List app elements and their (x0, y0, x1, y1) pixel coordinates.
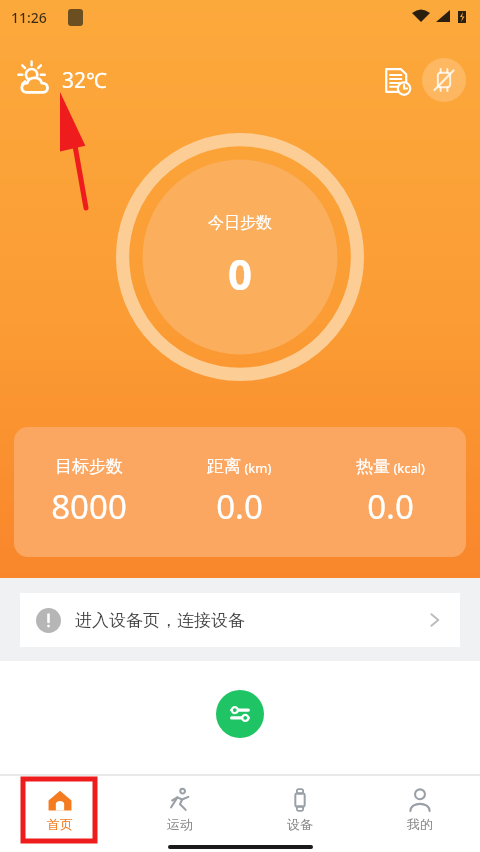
staticText: 11:26 (11, 8, 47, 27)
staticText: (km) (241, 459, 272, 477)
staticText: 0.0 (216, 484, 263, 529)
button[interactable]: 进入设备页，连接设备 (20, 593, 460, 647)
staticText: 首页 (47, 816, 73, 832)
staticText: 今日步数 (208, 213, 272, 233)
button[interactable]: 今日步数 (116, 133, 364, 381)
staticText: 设备 (287, 816, 313, 832)
button[interactable]: Device disconnected (422, 58, 466, 102)
button[interactable]: Settings (216, 690, 264, 738)
staticText: 32℃ (62, 66, 107, 95)
staticText: 距离 (207, 456, 241, 477)
staticText: 我的 (407, 816, 433, 832)
button[interactable]: 目标步数 (14, 427, 466, 557)
staticText: 进入设备页，连接设备 (75, 610, 245, 631)
staticText: 0 (228, 245, 253, 302)
staticText: 热量 (356, 456, 390, 477)
staticText: 目标步数 (55, 456, 123, 477)
staticText: (kcal) (390, 459, 426, 477)
button[interactable]: History (374, 58, 418, 102)
button[interactable]: 运动 (120, 775, 240, 843)
staticText: 8000 (51, 484, 127, 529)
staticText: 0.0 (367, 484, 414, 529)
button[interactable]: 我的 (360, 775, 480, 843)
button[interactable]: 设备 (240, 775, 360, 843)
button[interactable]: 首页 (0, 775, 120, 843)
staticText: 运动 (167, 816, 193, 832)
